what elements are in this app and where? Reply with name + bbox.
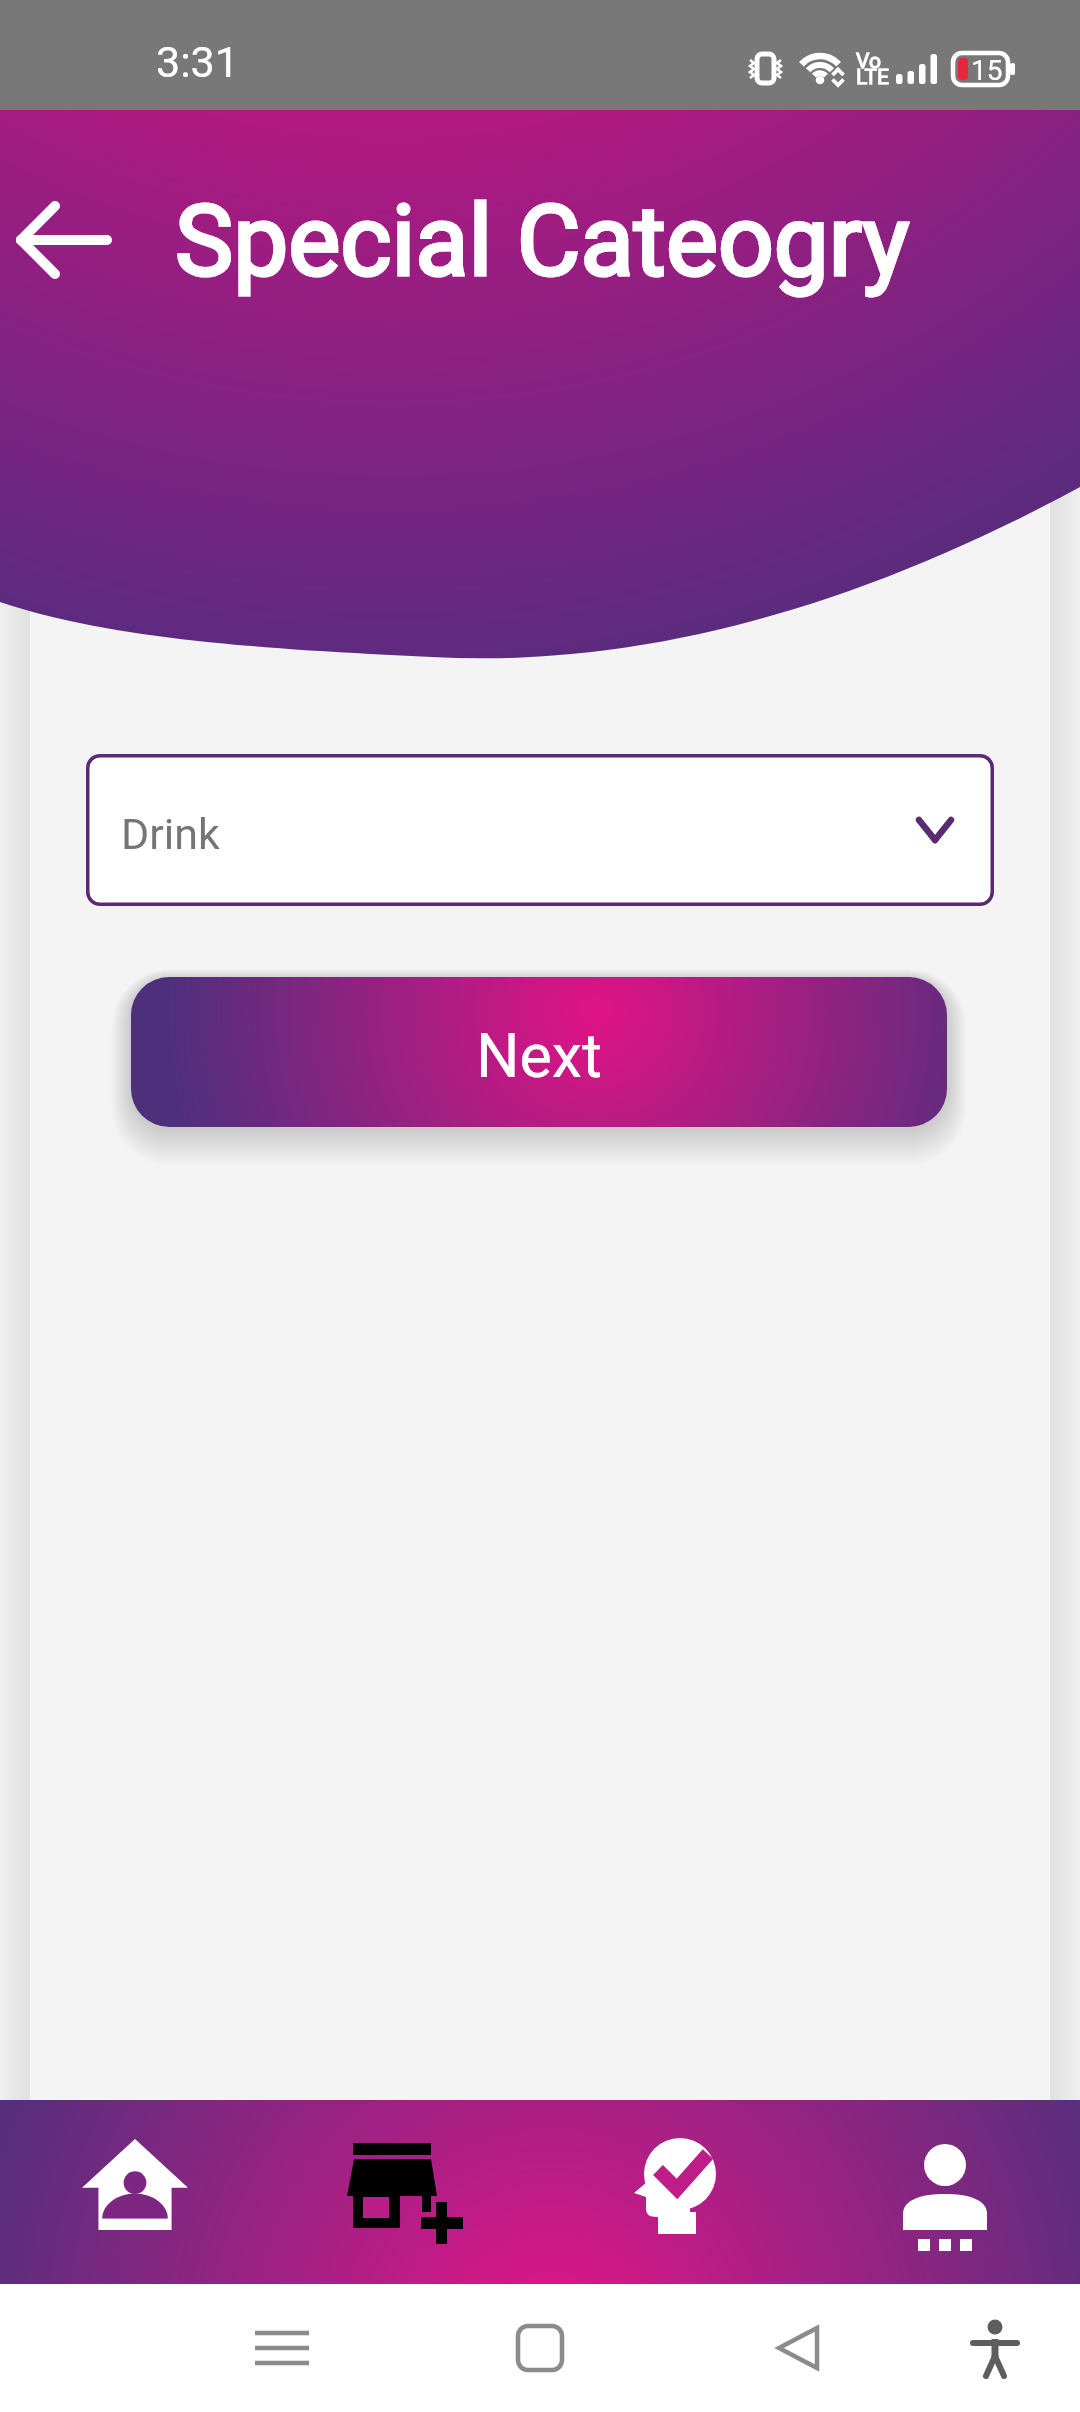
button[interactable]: Next (131, 977, 947, 1127)
staticText: Next (476, 1020, 603, 1091)
button[interactable]: Mindset (540, 2100, 810, 2284)
staticText: 3:31 (156, 37, 239, 87)
button[interactable]: Home (0, 2100, 270, 2284)
button[interactable]: Add store (270, 2100, 540, 2284)
button[interactable]: Drink (86, 754, 994, 906)
button[interactable]: Back (0, 176, 128, 304)
button[interactable]: Accessibility (940, 2304, 1050, 2392)
button[interactable]: Profile (810, 2100, 1080, 2284)
button[interactable]: Back (738, 2304, 858, 2392)
staticText: LTE (856, 65, 889, 90)
button[interactable]: Home (480, 2304, 600, 2392)
staticText: Drink (121, 809, 220, 859)
button[interactable]: Recents (222, 2304, 342, 2392)
staticText: Vo (856, 49, 881, 74)
staticText: 15 (971, 54, 1003, 87)
staticText: Special Cateogry (175, 184, 910, 299)
